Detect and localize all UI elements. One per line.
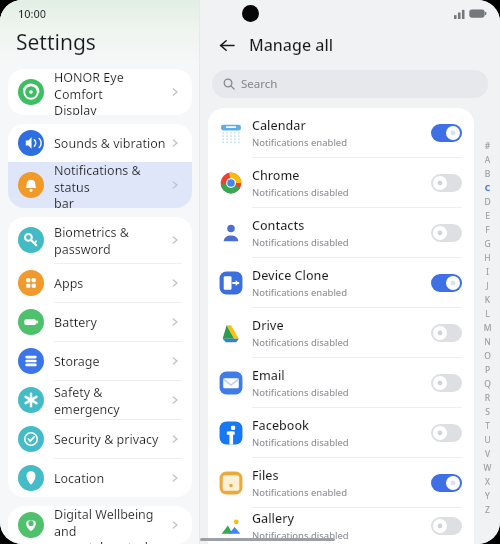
staticText: U bbox=[482, 434, 493, 448]
staticText: Files bbox=[252, 467, 279, 484]
staticText: Q bbox=[482, 378, 493, 392]
staticText: Sounds & vibration bbox=[54, 135, 168, 152]
button[interactable]: Drive bbox=[208, 308, 474, 357]
staticText: R bbox=[482, 392, 493, 406]
staticText: Notifications disabled bbox=[252, 436, 349, 449]
button[interactable]: Toggle notifications for Chrome bbox=[431, 174, 462, 192]
staticText: S bbox=[482, 406, 493, 420]
button[interactable]: Toggle notifications for Device Clone bbox=[431, 274, 462, 292]
button[interactable]: Toggle notifications for Calendar bbox=[431, 124, 462, 142]
button[interactable]: Search bbox=[212, 70, 488, 98]
button[interactable]: Back bbox=[214, 32, 240, 58]
staticText: Safety & emergency bbox=[54, 384, 168, 417]
staticText: Contacts bbox=[252, 217, 305, 234]
staticText: # bbox=[482, 140, 493, 154]
button[interactable]: Email bbox=[208, 358, 474, 407]
staticText: Chrome bbox=[252, 167, 300, 184]
staticText: Notifications enabled bbox=[252, 286, 348, 299]
staticText: Apps bbox=[54, 275, 168, 292]
staticText: F bbox=[482, 224, 493, 238]
button[interactable]: Gallery bbox=[208, 508, 474, 544]
staticText: M bbox=[482, 322, 493, 336]
staticText: Device Clone bbox=[252, 267, 329, 284]
staticText: Notifications disabled bbox=[252, 336, 349, 349]
button[interactable]: Files bbox=[208, 458, 474, 507]
staticText: D bbox=[482, 196, 493, 210]
staticText: Notifications enabled bbox=[252, 486, 348, 499]
staticText: Z bbox=[482, 504, 493, 518]
button[interactable]: Toggle notifications for Email bbox=[431, 374, 462, 392]
staticText: B bbox=[482, 168, 493, 182]
staticText: L bbox=[482, 308, 493, 322]
staticText: Biometrics & password bbox=[54, 224, 168, 257]
staticText: I bbox=[482, 266, 493, 280]
staticText: Location bbox=[54, 470, 168, 487]
staticText: E bbox=[482, 210, 493, 224]
staticText: Facebook bbox=[252, 417, 310, 434]
staticText: X bbox=[482, 476, 493, 490]
staticText: K bbox=[482, 294, 493, 308]
staticText: J bbox=[482, 280, 493, 294]
staticText: Notifications enabled bbox=[252, 136, 348, 149]
staticText: Storage bbox=[54, 353, 168, 370]
staticText: Notifications disabled bbox=[252, 186, 349, 199]
staticText: A bbox=[482, 154, 493, 168]
staticText: T bbox=[482, 420, 493, 434]
staticText: Y bbox=[482, 490, 493, 504]
button[interactable]: Toggle notifications for Contacts bbox=[431, 224, 462, 242]
staticText: Notifications disabled bbox=[252, 236, 349, 249]
button[interactable]: Toggle notifications for Files bbox=[431, 474, 462, 492]
button[interactable]: Safety & emergency bbox=[8, 381, 192, 419]
button[interactable]: Biometrics & password bbox=[8, 217, 192, 263]
button[interactable]: Facebook bbox=[208, 408, 474, 457]
staticText: Drive bbox=[252, 317, 284, 334]
staticText: HONOR Eye Comfort Display bbox=[54, 69, 168, 115]
staticText: Gallery bbox=[252, 510, 295, 527]
staticText: Notifications disabled bbox=[252, 529, 349, 542]
staticText: Digital Wellbeing and parental controls bbox=[54, 506, 168, 544]
button[interactable]: HONOR Eye Comfort Display bbox=[8, 69, 192, 115]
staticText: V bbox=[482, 448, 493, 462]
staticText: C bbox=[482, 182, 493, 196]
button[interactable]: Device Clone bbox=[208, 258, 474, 307]
button[interactable]: Digital Wellbeing and parental controls bbox=[8, 506, 192, 544]
staticText: 10:00 bbox=[18, 6, 47, 21]
button[interactable]: Location bbox=[8, 459, 192, 497]
staticText: O bbox=[482, 350, 493, 364]
staticText: Calendar bbox=[252, 117, 306, 134]
button[interactable]: Battery bbox=[8, 303, 192, 341]
button[interactable]: Contacts bbox=[208, 208, 474, 257]
staticText: Security & privacy bbox=[54, 431, 168, 448]
staticText: P bbox=[482, 364, 493, 378]
button[interactable]: Calendar bbox=[208, 108, 474, 157]
staticText: Notifications & status bar bbox=[54, 162, 168, 208]
button[interactable]: Chrome bbox=[208, 158, 474, 207]
staticText: Notifications disabled bbox=[252, 386, 349, 399]
staticText: Search bbox=[241, 76, 278, 92]
staticText: Settings bbox=[16, 28, 96, 57]
button[interactable]: Toggle notifications for Drive bbox=[431, 324, 462, 342]
button[interactable]: Sounds & vibration bbox=[8, 124, 192, 162]
staticText: Battery bbox=[54, 314, 168, 331]
staticText: Email bbox=[252, 367, 285, 384]
staticText: N bbox=[482, 336, 493, 350]
staticText: H bbox=[482, 252, 493, 266]
button[interactable]: Storage bbox=[8, 342, 192, 380]
button[interactable]: Security & privacy bbox=[8, 420, 192, 458]
button[interactable]: Apps bbox=[8, 264, 192, 302]
staticText: Manage all bbox=[249, 34, 334, 56]
staticText: G bbox=[482, 238, 493, 252]
button[interactable]: Toggle notifications for Facebook bbox=[431, 424, 462, 442]
button[interactable]: Toggle notifications for Gallery bbox=[431, 517, 462, 535]
button[interactable]: Notifications & status bar bbox=[8, 162, 192, 208]
staticText: W bbox=[482, 462, 493, 476]
